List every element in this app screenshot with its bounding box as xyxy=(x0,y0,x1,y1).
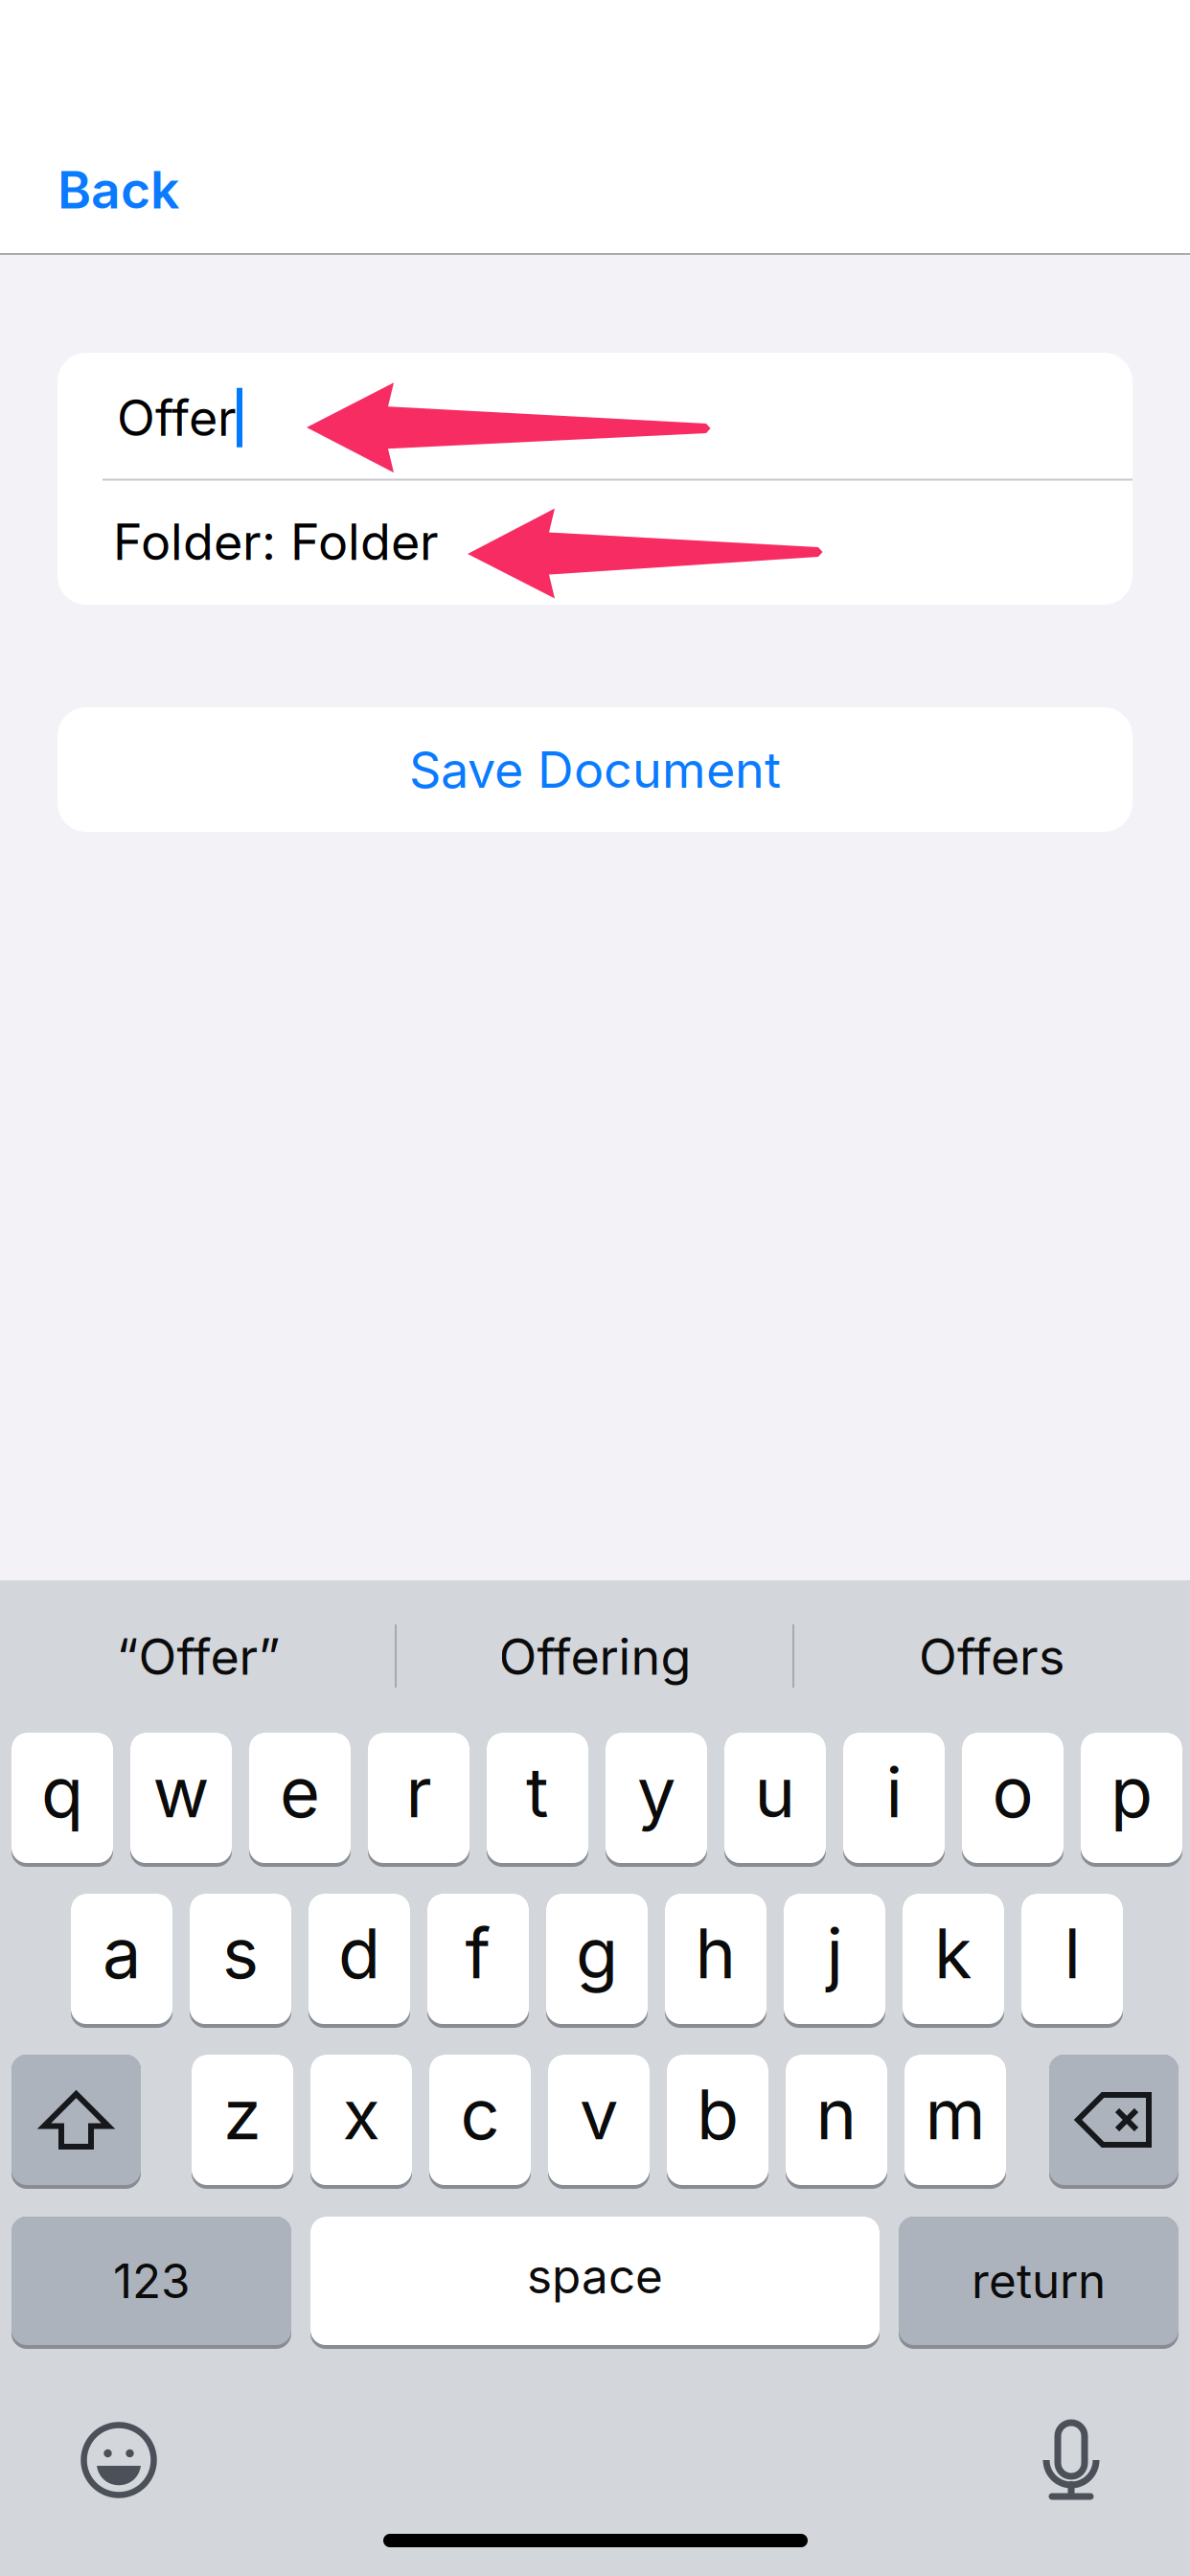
button[interactable]: j xyxy=(784,1894,885,2024)
staticText: Back xyxy=(57,159,179,221)
staticText: space xyxy=(527,2247,663,2305)
staticText: l xyxy=(1064,1911,1080,1995)
staticText: b xyxy=(697,2072,739,2156)
staticText: q xyxy=(41,1750,83,1834)
button[interactable]: z xyxy=(192,2055,293,2185)
button[interactable]: h xyxy=(665,1894,767,2024)
button[interactable]: “Offer” xyxy=(0,1580,397,1733)
button[interactable]: c xyxy=(429,2055,531,2185)
button[interactable]: a xyxy=(71,1894,172,2024)
button[interactable]: q xyxy=(11,1733,113,1863)
staticText: v xyxy=(580,2072,618,2156)
button[interactable]: Offers xyxy=(793,1580,1190,1733)
staticText: return xyxy=(972,2252,1106,2309)
button[interactable]: return xyxy=(899,2217,1179,2345)
staticText: Folder: Folder xyxy=(113,512,439,572)
staticText: j xyxy=(826,1911,843,1995)
button[interactable]: d xyxy=(309,1894,410,2024)
staticText: t xyxy=(526,1750,549,1834)
button[interactable]: o xyxy=(962,1733,1064,1863)
staticText: y xyxy=(637,1750,675,1834)
staticText: f xyxy=(465,1911,491,1995)
button[interactable]: Emoji keyboard xyxy=(80,2422,157,2498)
staticText: u xyxy=(755,1750,796,1834)
button[interactable]: k xyxy=(903,1894,1004,2024)
staticText: w xyxy=(153,1750,209,1834)
button[interactable]: b xyxy=(667,2055,768,2185)
button[interactable]: Save Document xyxy=(57,707,1133,832)
staticText: z xyxy=(223,2072,262,2156)
button[interactable]: Offer xyxy=(57,353,1133,479)
staticText: k xyxy=(934,1911,973,1995)
button[interactable]: t xyxy=(487,1733,588,1863)
staticText: i xyxy=(886,1750,902,1834)
button[interactable]: r xyxy=(368,1733,469,1863)
button[interactable]: g xyxy=(546,1894,648,2024)
staticText: p xyxy=(1110,1750,1153,1834)
button[interactable]: i xyxy=(843,1733,945,1863)
button[interactable]: Delete xyxy=(1049,2055,1179,2185)
button[interactable]: Offering xyxy=(397,1580,793,1733)
button[interactable]: v xyxy=(548,2055,650,2185)
button[interactable]: Folder: Folder xyxy=(57,479,1133,605)
button[interactable]: y xyxy=(606,1733,707,1863)
staticText: s xyxy=(222,1911,259,1995)
button[interactable]: Dictation xyxy=(1033,2416,1110,2512)
button[interactable]: e xyxy=(249,1733,351,1863)
button[interactable]: m xyxy=(904,2055,1006,2185)
staticText: Offering xyxy=(499,1626,691,1687)
button[interactable]: w xyxy=(130,1733,232,1863)
button[interactable]: n xyxy=(786,2055,887,2185)
button[interactable]: Shift xyxy=(11,2055,141,2185)
staticText: 123 xyxy=(113,2252,190,2309)
staticText: x xyxy=(343,2072,380,2156)
staticText: c xyxy=(460,2072,500,2156)
button[interactable]: space xyxy=(310,2217,880,2345)
staticText: r xyxy=(406,1750,432,1834)
staticText: o xyxy=(992,1750,1033,1834)
button[interactable]: x xyxy=(310,2055,412,2185)
staticText: Save Document xyxy=(409,739,781,800)
staticText: h xyxy=(695,1911,736,1995)
button[interactable]: f xyxy=(427,1894,529,2024)
staticText: Offers xyxy=(919,1626,1064,1687)
button[interactable]: p xyxy=(1081,1733,1182,1863)
staticText: Offer xyxy=(117,387,237,448)
button[interactable]: Back xyxy=(57,155,374,224)
staticText: d xyxy=(338,1911,380,1995)
staticText: e xyxy=(280,1750,320,1834)
staticText: n xyxy=(816,2072,857,2156)
button[interactable]: u xyxy=(724,1733,826,1863)
staticText: g xyxy=(576,1911,618,1995)
button[interactable]: s xyxy=(190,1894,291,2024)
button[interactable]: 123 xyxy=(11,2217,291,2345)
button[interactable]: l xyxy=(1021,1894,1123,2024)
staticText: a xyxy=(103,1911,141,1995)
staticText: “Offer” xyxy=(116,1626,280,1687)
staticText: m xyxy=(925,2072,985,2156)
